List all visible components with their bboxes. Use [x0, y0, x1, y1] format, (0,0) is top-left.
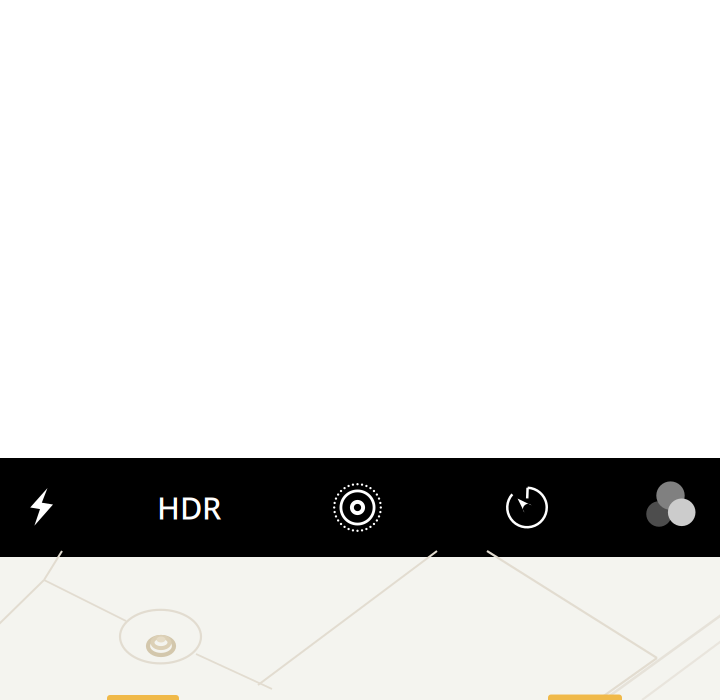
button[interactable]: Flash [0, 458, 115, 557]
button[interactable]: HDR [115, 458, 273, 557]
button[interactable]: Live Photo [273, 458, 442, 557]
button[interactable]: Filters [604, 458, 720, 557]
button[interactable]: Timer [442, 458, 604, 557]
staticText: HDR [157, 487, 221, 528]
